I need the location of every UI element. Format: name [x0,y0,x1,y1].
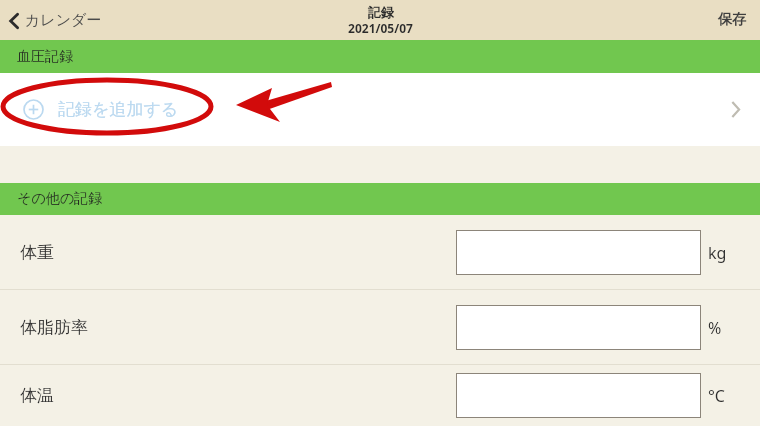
staticText: °C [708,385,725,407]
staticText: 2021/05/07 [348,20,413,36]
staticText: 体温 [20,385,54,406]
staticText: その他の記録 [17,190,102,208]
other: Open blood pressure records [731,102,740,117]
staticText: 記録を追加する [58,99,179,120]
staticText: 体重 [20,242,54,263]
staticText: カレンダー [25,11,102,30]
button[interactable]: 保存 [704,4,760,36]
staticText: 保存 [718,11,746,29]
button[interactable]: カレンダー [0,6,112,35]
staticText: 体脂肪率 [20,317,88,338]
staticText: 血圧記録 [17,48,73,66]
staticText: 記録 [368,4,394,20]
button[interactable]: 記録を追加する [0,73,760,146]
button[interactable]: 体脂肪率 [0,290,760,364]
staticText: kg [708,242,727,264]
staticText: % [708,317,722,339]
button[interactable]: 体温 [0,365,760,426]
button[interactable]: 体重 [0,215,760,289]
